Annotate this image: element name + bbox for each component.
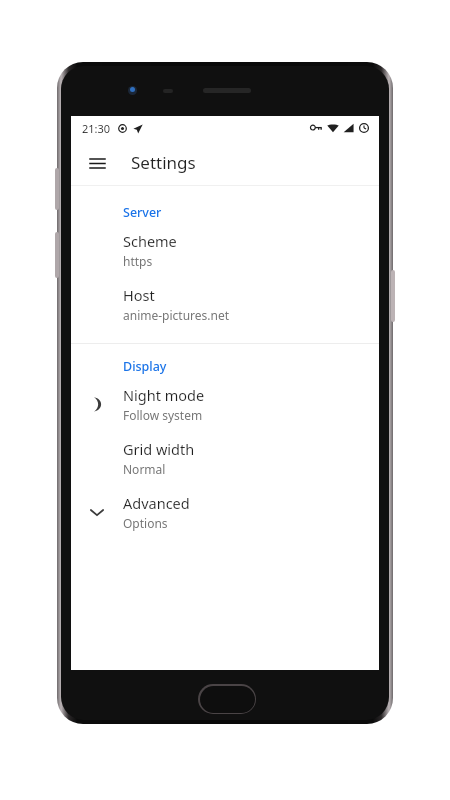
staticText: Follow system [123, 407, 203, 423]
staticText: Night mode [123, 385, 205, 405]
staticText: Scheme [123, 231, 177, 251]
staticText: Display [123, 358, 167, 375]
staticText: Grid width [123, 439, 195, 459]
staticText: Host [123, 285, 155, 305]
button[interactable]: Grid width [71, 431, 379, 485]
staticText: https [123, 253, 153, 269]
staticText: Server [123, 204, 162, 221]
button[interactable]: Advanced [71, 485, 379, 539]
staticText: Options [123, 515, 168, 531]
staticText: Normal [123, 461, 166, 477]
button[interactable]: Open navigation menu [79, 145, 115, 181]
button[interactable]: Host [71, 277, 379, 331]
staticText: 21:30 [82, 121, 111, 136]
staticText: Advanced [123, 493, 190, 513]
staticText: anime-pictures.net [123, 307, 230, 323]
staticText: Settings [131, 151, 196, 174]
button[interactable]: Night mode [71, 377, 379, 431]
button[interactable]: Scheme [71, 223, 379, 277]
